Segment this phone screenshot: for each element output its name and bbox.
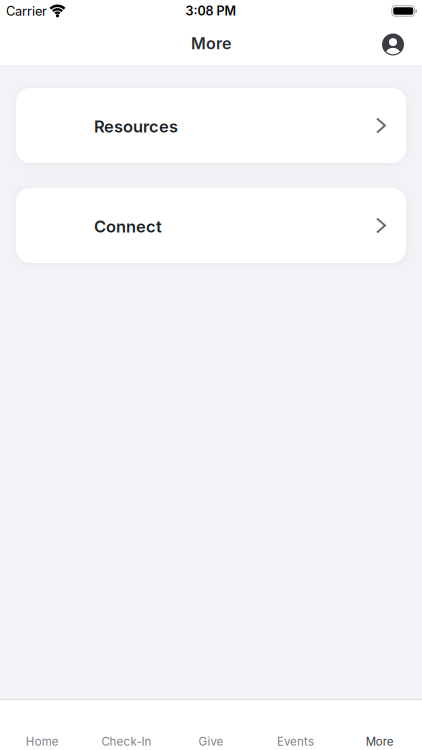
button[interactable]: Connect (16, 188, 406, 263)
button[interactable]: Profile (382, 32, 404, 54)
staticText: Connect (94, 217, 162, 236)
button[interactable]: Give (169, 735, 253, 748)
staticText: Give (198, 735, 223, 748)
staticText: 3:08 PM (185, 3, 236, 18)
staticText: Check-In (102, 735, 152, 748)
button[interactable]: More (338, 735, 422, 748)
staticText: More (366, 735, 394, 748)
button[interactable]: Resources (16, 88, 406, 163)
button[interactable]: Check-In (84, 735, 169, 748)
staticText: Resources (94, 117, 178, 136)
button[interactable]: Home (0, 735, 84, 748)
staticText: Carrier (6, 3, 47, 19)
button[interactable]: Events (253, 735, 338, 748)
staticText: Home (26, 735, 59, 748)
staticText: Events (277, 735, 314, 748)
staticText: More (191, 34, 231, 53)
